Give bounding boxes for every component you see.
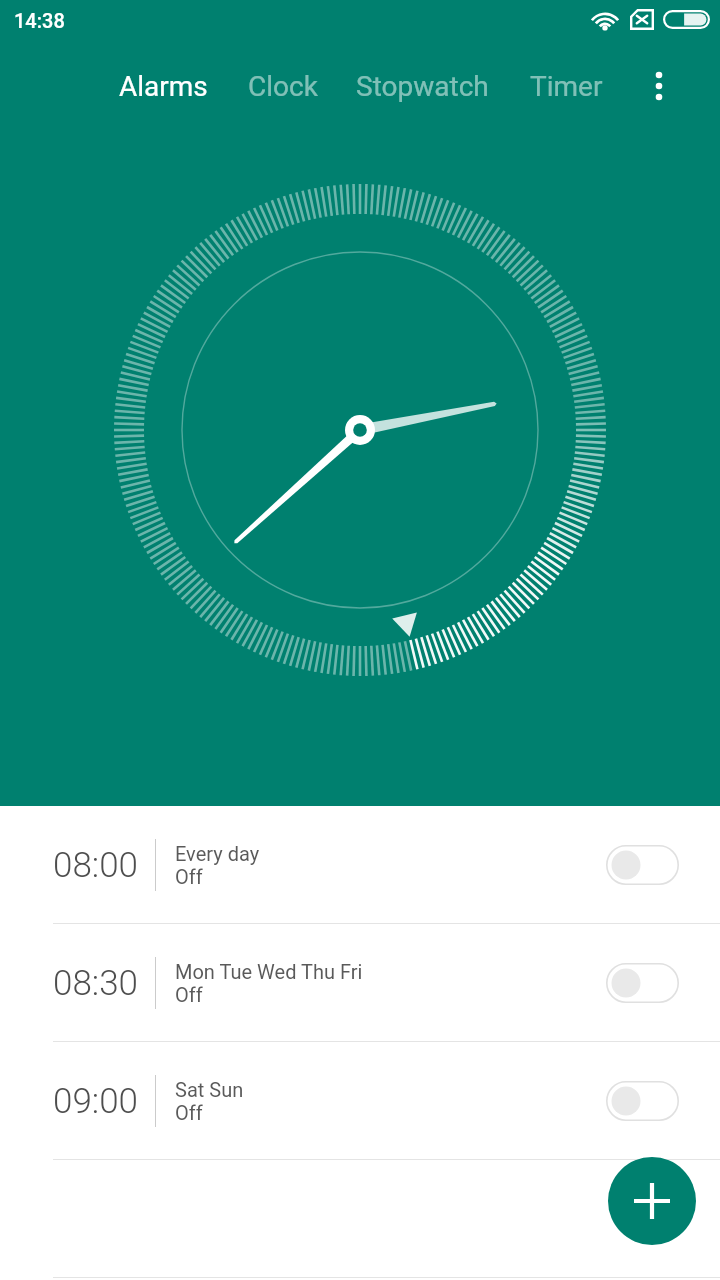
staticText: Clock xyxy=(248,70,318,103)
button[interactable]: Alarms xyxy=(119,62,208,110)
staticText: 08:00 xyxy=(53,845,139,886)
button[interactable]: Stopwatch xyxy=(356,62,489,110)
staticText: Off xyxy=(175,983,203,1006)
staticText: Every day xyxy=(175,842,260,865)
button[interactable]: 08:00 xyxy=(0,806,720,924)
button[interactable]: More options xyxy=(631,62,687,110)
staticText: Sat Sun xyxy=(175,1078,244,1101)
staticText: Off xyxy=(175,1101,203,1124)
button[interactable]: 08:30 xyxy=(0,924,720,1042)
button[interactable]: Toggle alarm xyxy=(606,845,679,885)
staticText: Alarms xyxy=(119,70,208,103)
staticText: Stopwatch xyxy=(356,70,489,103)
staticText: 14:38 xyxy=(14,9,65,32)
staticText: Mon Tue Wed Thu Fri xyxy=(175,960,363,983)
button[interactable]: Toggle alarm xyxy=(606,1081,679,1121)
staticText: Off xyxy=(175,865,203,888)
staticText: 08:30 xyxy=(53,963,139,1004)
button[interactable]: Clock xyxy=(248,62,318,110)
button[interactable]: 09:00 xyxy=(0,1042,720,1160)
button[interactable]: Add alarm xyxy=(608,1157,696,1245)
staticText: Timer xyxy=(530,70,603,103)
staticText: 09:00 xyxy=(53,1081,139,1122)
button[interactable]: Timer xyxy=(530,62,603,110)
button[interactable]: Toggle alarm xyxy=(606,963,679,1003)
